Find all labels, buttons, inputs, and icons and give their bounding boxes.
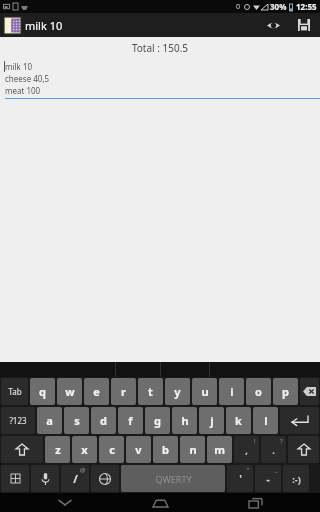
button[interactable]: w [57, 378, 82, 405]
staticText: s [74, 413, 80, 428]
button[interactable]: v [126, 436, 151, 463]
button[interactable]: l [253, 407, 278, 434]
button[interactable]: q [30, 378, 55, 405]
button[interactable]: n [180, 436, 205, 463]
button[interactable]: f [118, 407, 143, 434]
staticText: w [65, 384, 75, 399]
button[interactable]: QWERTY [121, 465, 225, 492]
staticText: 12:55 [296, 1, 317, 12]
staticText: Total : 150.5 [0, 41, 320, 55]
button[interactable]: g [145, 407, 170, 434]
staticText: t [148, 384, 153, 399]
staticText: m [214, 442, 225, 457]
staticText: ' [239, 472, 242, 486]
button[interactable]: c [99, 436, 124, 463]
staticText: _ [275, 466, 278, 474]
button[interactable]: ' [227, 465, 253, 492]
button[interactable]: k [226, 407, 251, 434]
staticText: milk 10 [5, 61, 33, 72]
staticText: r [121, 384, 126, 399]
button[interactable]: Save [288, 13, 320, 37]
staticText: QWERTY [155, 473, 192, 485]
staticText: b [162, 442, 169, 457]
button[interactable]: r [111, 378, 136, 405]
button[interactable]: o [246, 378, 271, 405]
staticText: 30% [270, 1, 287, 12]
staticText: d [100, 413, 107, 428]
button[interactable]: y [165, 378, 190, 405]
staticText: c [109, 442, 115, 457]
staticText: Tab [8, 386, 22, 397]
staticText: g [154, 413, 161, 428]
staticText: - [266, 472, 270, 486]
staticText: k [235, 413, 242, 428]
staticText: u [201, 384, 209, 399]
staticText: milk 10 [25, 18, 63, 33]
staticText: @ [80, 466, 86, 474]
staticText: cheese 40,5 [5, 73, 50, 84]
staticText: p [282, 384, 289, 399]
button[interactable]: Recents [225, 493, 285, 512]
button[interactable] [31, 465, 59, 492]
button[interactable]: u [192, 378, 217, 405]
button[interactable]: j [199, 407, 224, 434]
button[interactable]: d [91, 407, 116, 434]
button[interactable]: i [219, 378, 244, 405]
button[interactable]: s [64, 407, 89, 434]
staticText: l [264, 413, 268, 428]
button[interactable]: Preview [258, 13, 288, 37]
button[interactable]: ?123 [1, 407, 35, 434]
button[interactable]: p [273, 378, 298, 405]
staticText: z [55, 442, 61, 457]
staticText: y [174, 384, 181, 399]
staticText: v [135, 442, 142, 457]
button[interactable]: m [207, 436, 232, 463]
button[interactable]: a [37, 407, 62, 434]
staticText: i [230, 384, 234, 399]
staticText: f [128, 413, 133, 428]
button[interactable]: :-) [283, 465, 309, 492]
button[interactable] [288, 436, 319, 463]
staticText: . [272, 444, 275, 456]
staticText: " [247, 466, 250, 474]
staticText: meat 100 [5, 85, 41, 96]
staticText: , [245, 444, 248, 456]
staticText: ? [280, 437, 283, 445]
staticText: :-) [292, 473, 301, 485]
button[interactable]: h [172, 407, 197, 434]
staticText: ! [254, 437, 256, 445]
staticText: / [73, 471, 78, 486]
button[interactable]: Home [130, 493, 190, 512]
button[interactable]: b [153, 436, 178, 463]
button[interactable]: e [84, 378, 109, 405]
staticText: 0 [236, 2, 241, 12]
button[interactable] [280, 407, 319, 434]
staticText: x [81, 442, 88, 457]
button[interactable] [300, 378, 319, 405]
button[interactable]: z [45, 436, 70, 463]
button[interactable]: t [138, 378, 163, 405]
button[interactable]: x [72, 436, 97, 463]
staticText: h [181, 413, 189, 428]
button[interactable]: . [261, 436, 286, 463]
button[interactable]: - [255, 465, 281, 492]
staticText: j [210, 413, 214, 428]
staticText: e [93, 384, 100, 399]
button[interactable] [91, 465, 119, 492]
staticText: o [255, 384, 262, 399]
staticText: q [39, 384, 46, 399]
button[interactable] [1, 465, 29, 492]
button[interactable]: Hide keyboard [35, 493, 95, 512]
staticText: a [46, 413, 53, 428]
button[interactable]: , [234, 436, 259, 463]
button[interactable]: Tab [1, 378, 28, 405]
staticText: ?123 [9, 415, 27, 426]
button[interactable] [1, 436, 43, 463]
staticText: n [189, 442, 197, 457]
button[interactable]: / [61, 465, 89, 492]
